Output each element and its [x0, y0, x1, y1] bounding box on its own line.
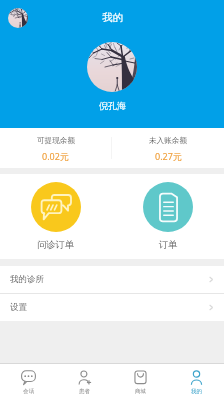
staticText: 设置: [10, 302, 27, 313]
staticText: 我的: [102, 11, 123, 24]
staticText: 患者: [79, 388, 90, 395]
button[interactable]: 设置: [0, 294, 224, 321]
staticText: 倪孔海: [99, 100, 126, 111]
staticText: 我的: [191, 388, 202, 395]
staticText: 问诊订单: [37, 239, 75, 251]
button[interactable]: 患者: [56, 364, 112, 400]
button[interactable]: 未入账余额: [112, 128, 224, 168]
button[interactable]: 商城: [112, 364, 168, 400]
staticText: 0.27元: [155, 150, 182, 162]
button[interactable]: 我的诊所: [0, 266, 224, 293]
button[interactable]: 可提现余额: [0, 128, 111, 168]
staticText: 会话: [23, 388, 34, 395]
staticText: 可提现余额: [37, 136, 75, 146]
button[interactable]: Avatar: [87, 42, 137, 92]
button[interactable]: 订单: [112, 174, 224, 259]
staticText: 未入账余额: [149, 136, 187, 146]
button[interactable]: 问诊订单: [0, 174, 112, 259]
button[interactable]: Profile photo: [8, 8, 28, 28]
staticText: 商城: [135, 388, 146, 395]
button[interactable]: 会话: [0, 364, 56, 400]
staticText: 0.02元: [42, 150, 69, 162]
staticText: 我的诊所: [10, 274, 44, 285]
staticText: 订单: [159, 239, 178, 251]
button[interactable]: 我的: [168, 364, 224, 400]
